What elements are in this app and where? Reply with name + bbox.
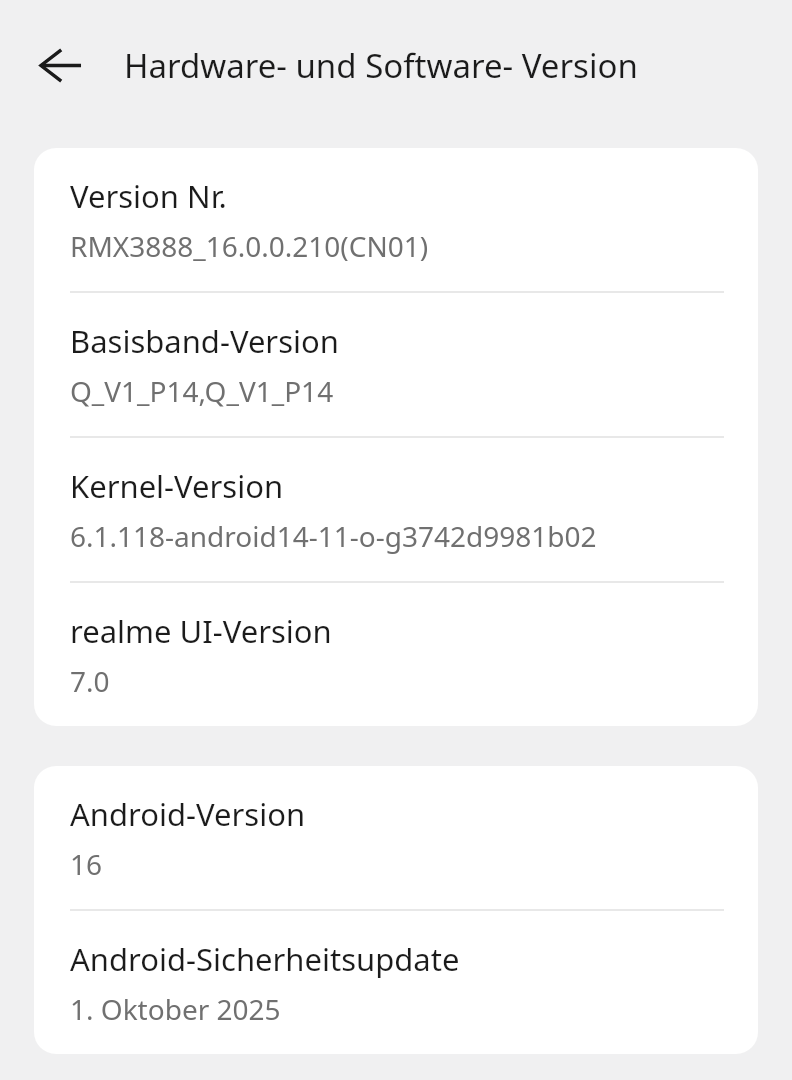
staticText: 1. Oktober 2025 [70, 990, 281, 1028]
staticText: 7.0 [70, 662, 110, 700]
staticText: 16 [70, 845, 103, 883]
staticText: Basisband-Version [70, 320, 339, 362]
staticText: Android-Sicherheitsupdate [70, 938, 460, 980]
button[interactable]: Android-Sicherheitsupdate [34, 911, 758, 1054]
staticText: Q_V1_P14,Q_V1_P14 [70, 372, 334, 410]
staticText: Version Nr. [70, 175, 227, 217]
button[interactable]: Kernel-Version [34, 438, 758, 583]
button[interactable]: realme UI-Version [34, 583, 758, 726]
staticText: RMX3888_16.0.0.210(CN01) [70, 227, 429, 265]
staticText: Android-Version [70, 793, 306, 835]
button[interactable]: Version Nr. [34, 148, 758, 293]
staticText: Hardware- und Software- Version [124, 43, 638, 88]
staticText: Kernel-Version [70, 465, 284, 507]
button[interactable]: Android-Version [34, 766, 758, 911]
button[interactable]: Basisband-Version [34, 293, 758, 438]
staticText: 6.1.118-android14-11-o-g3742d9981b02 [70, 517, 597, 555]
button[interactable]: Back [22, 26, 100, 104]
staticText: realme UI-Version [70, 610, 332, 652]
